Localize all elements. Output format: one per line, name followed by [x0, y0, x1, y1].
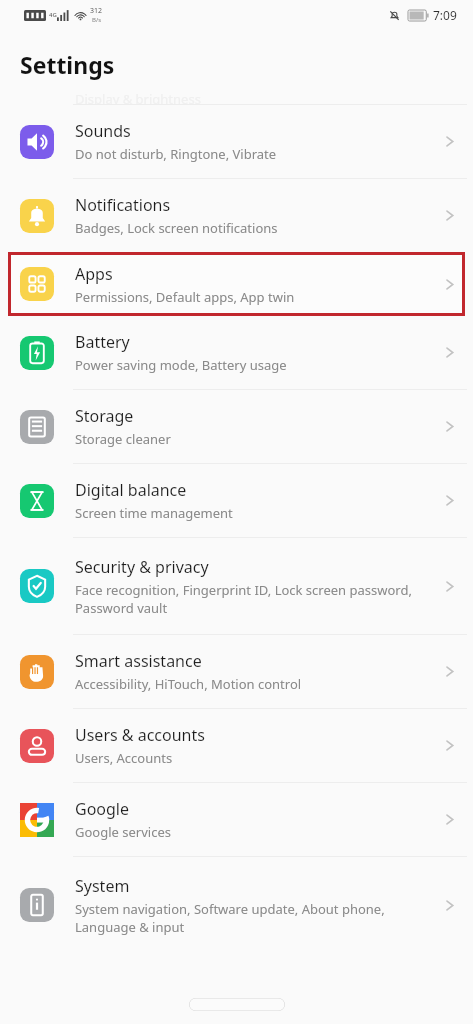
staticText: Storage [75, 405, 134, 427]
staticText: B/s [92, 16, 102, 24]
button[interactable]: Apps [11, 255, 462, 313]
staticText: Battery [75, 331, 130, 353]
staticText: Smart assistance [75, 650, 202, 672]
staticText: Sounds [75, 120, 131, 142]
button[interactable]: Storage [0, 390, 473, 463]
button[interactable]: Digital balance [0, 464, 473, 537]
staticText: Users, Accounts [75, 749, 173, 767]
button[interactable]: Google [0, 783, 473, 856]
staticText: Google services [75, 823, 171, 841]
button[interactable]: Security & privacy [0, 538, 473, 634]
button[interactable]: Sounds [0, 105, 473, 178]
staticText: Settings [20, 49, 115, 80]
staticText: Google [75, 798, 130, 820]
staticText: System [75, 875, 130, 897]
button[interactable]: Battery [0, 316, 473, 389]
button[interactable]: Smart assistance [0, 635, 473, 708]
staticText: Storage cleaner [75, 430, 171, 448]
staticText: Apps [75, 263, 113, 285]
staticText: Screen time management [75, 504, 233, 522]
button[interactable]: System [0, 857, 473, 953]
staticText: 312 [90, 6, 103, 16]
button[interactable]: Users & accounts [0, 709, 473, 782]
button[interactable]: Notifications [0, 179, 473, 252]
staticText: Users & accounts [75, 724, 205, 746]
staticText: Badges, Lock screen notifications [75, 219, 278, 237]
staticText: Display & brightness [75, 90, 201, 104]
staticText: System navigation, Software update, Abou… [75, 900, 437, 936]
staticText: Face recognition, Fingerprint ID, Lock s… [75, 581, 437, 617]
staticText: Permissions, Default apps, App twin [75, 288, 295, 306]
staticText: 4G [49, 11, 57, 19]
staticText: Notifications [75, 194, 171, 216]
staticText: Power saving mode, Battery usage [75, 356, 287, 374]
staticText: Digital balance [75, 479, 187, 501]
staticText: 7:09 [433, 7, 457, 23]
staticText: Accessibility, HiTouch, Motion control [75, 675, 302, 693]
staticText: Security & privacy [75, 556, 209, 578]
staticText: Do not disturb, Ringtone, Vibrate [75, 145, 277, 163]
